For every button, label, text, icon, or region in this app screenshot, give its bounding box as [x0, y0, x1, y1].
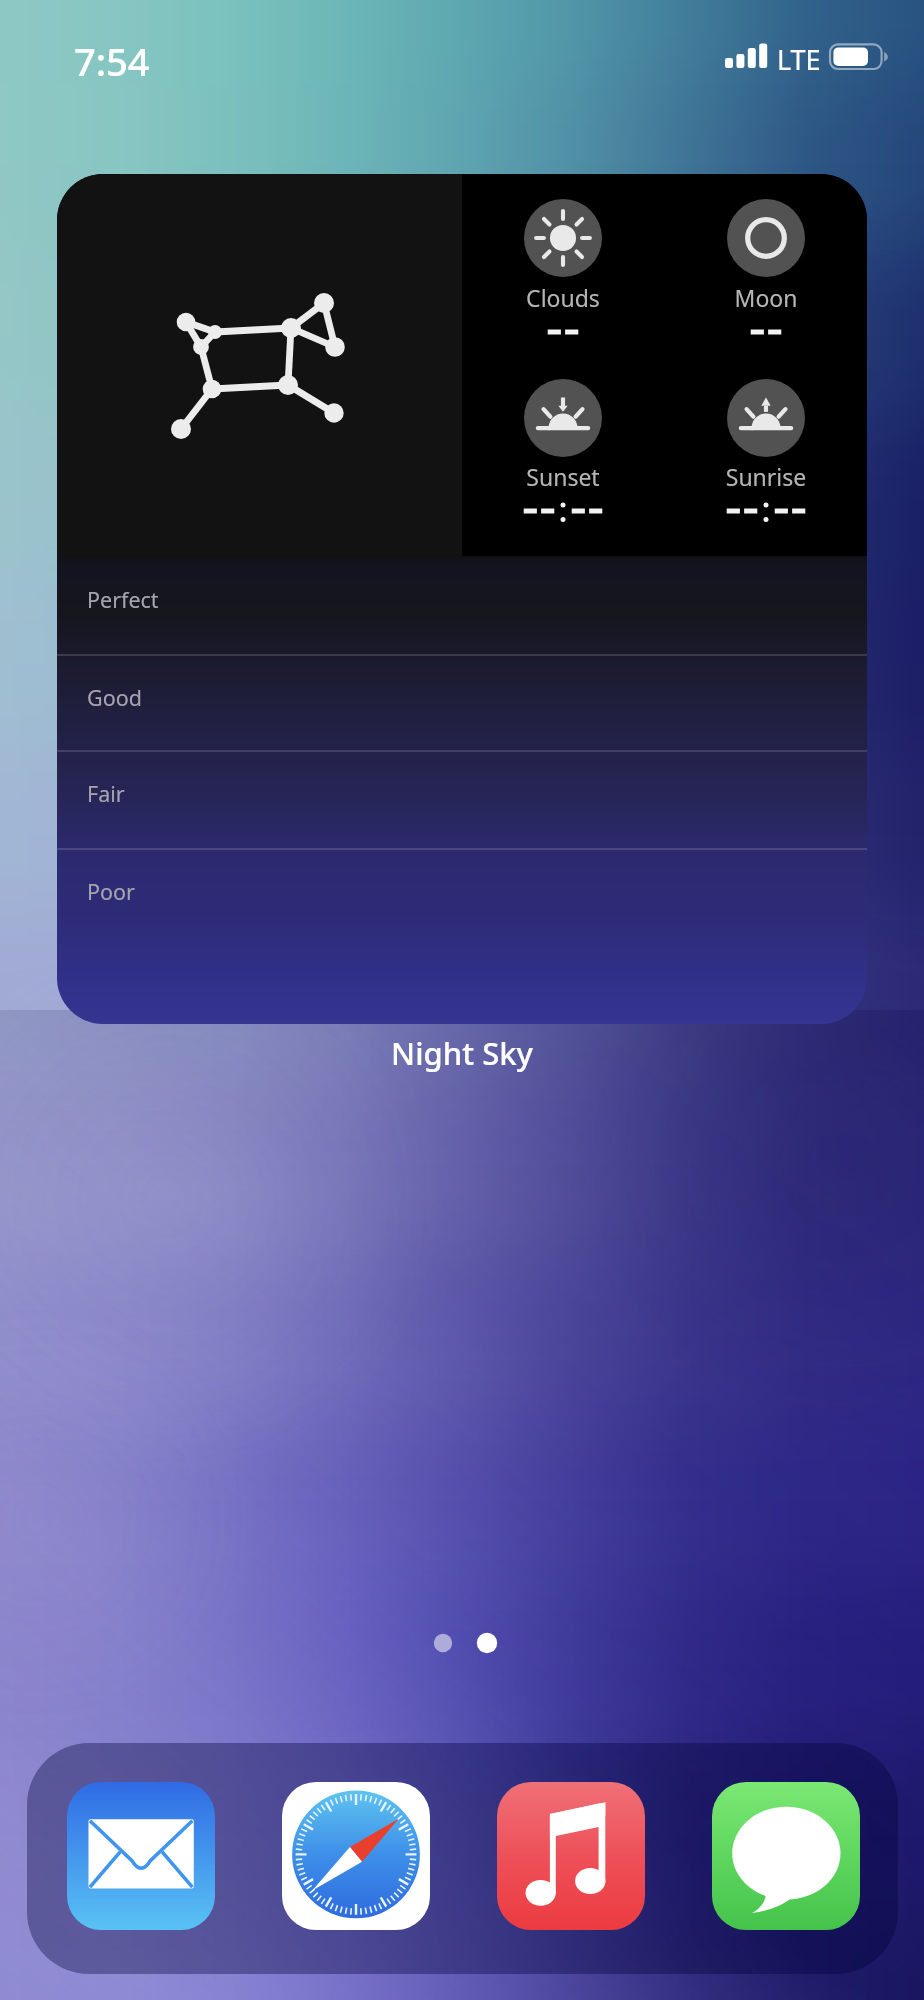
button[interactable]: Perfect	[57, 556, 867, 654]
button[interactable]: Clouds	[57, 174, 867, 1024]
button[interactable]: Poor	[57, 848, 867, 946]
staticText: Sunset	[453, 461, 673, 492]
button[interactable]: Music	[497, 1782, 645, 1930]
staticText: Clouds	[453, 282, 673, 313]
staticText: Fair	[87, 779, 125, 808]
staticText: 7:54	[74, 35, 150, 87]
staticText: Good	[87, 683, 142, 712]
staticText: Sunrise	[656, 461, 867, 492]
staticText: Poor	[87, 877, 135, 906]
button[interactable]: Mail	[67, 1782, 215, 1930]
staticText: Moon	[656, 282, 867, 313]
staticText: Night Sky	[0, 1032, 924, 1074]
button[interactable]: Safari	[282, 1782, 430, 1930]
staticText: LTE	[777, 41, 821, 78]
button[interactable]: Fair	[57, 750, 867, 848]
staticText: Perfect	[87, 585, 159, 614]
button[interactable]: Messages	[712, 1782, 860, 1930]
button[interactable]: Good	[57, 654, 867, 752]
